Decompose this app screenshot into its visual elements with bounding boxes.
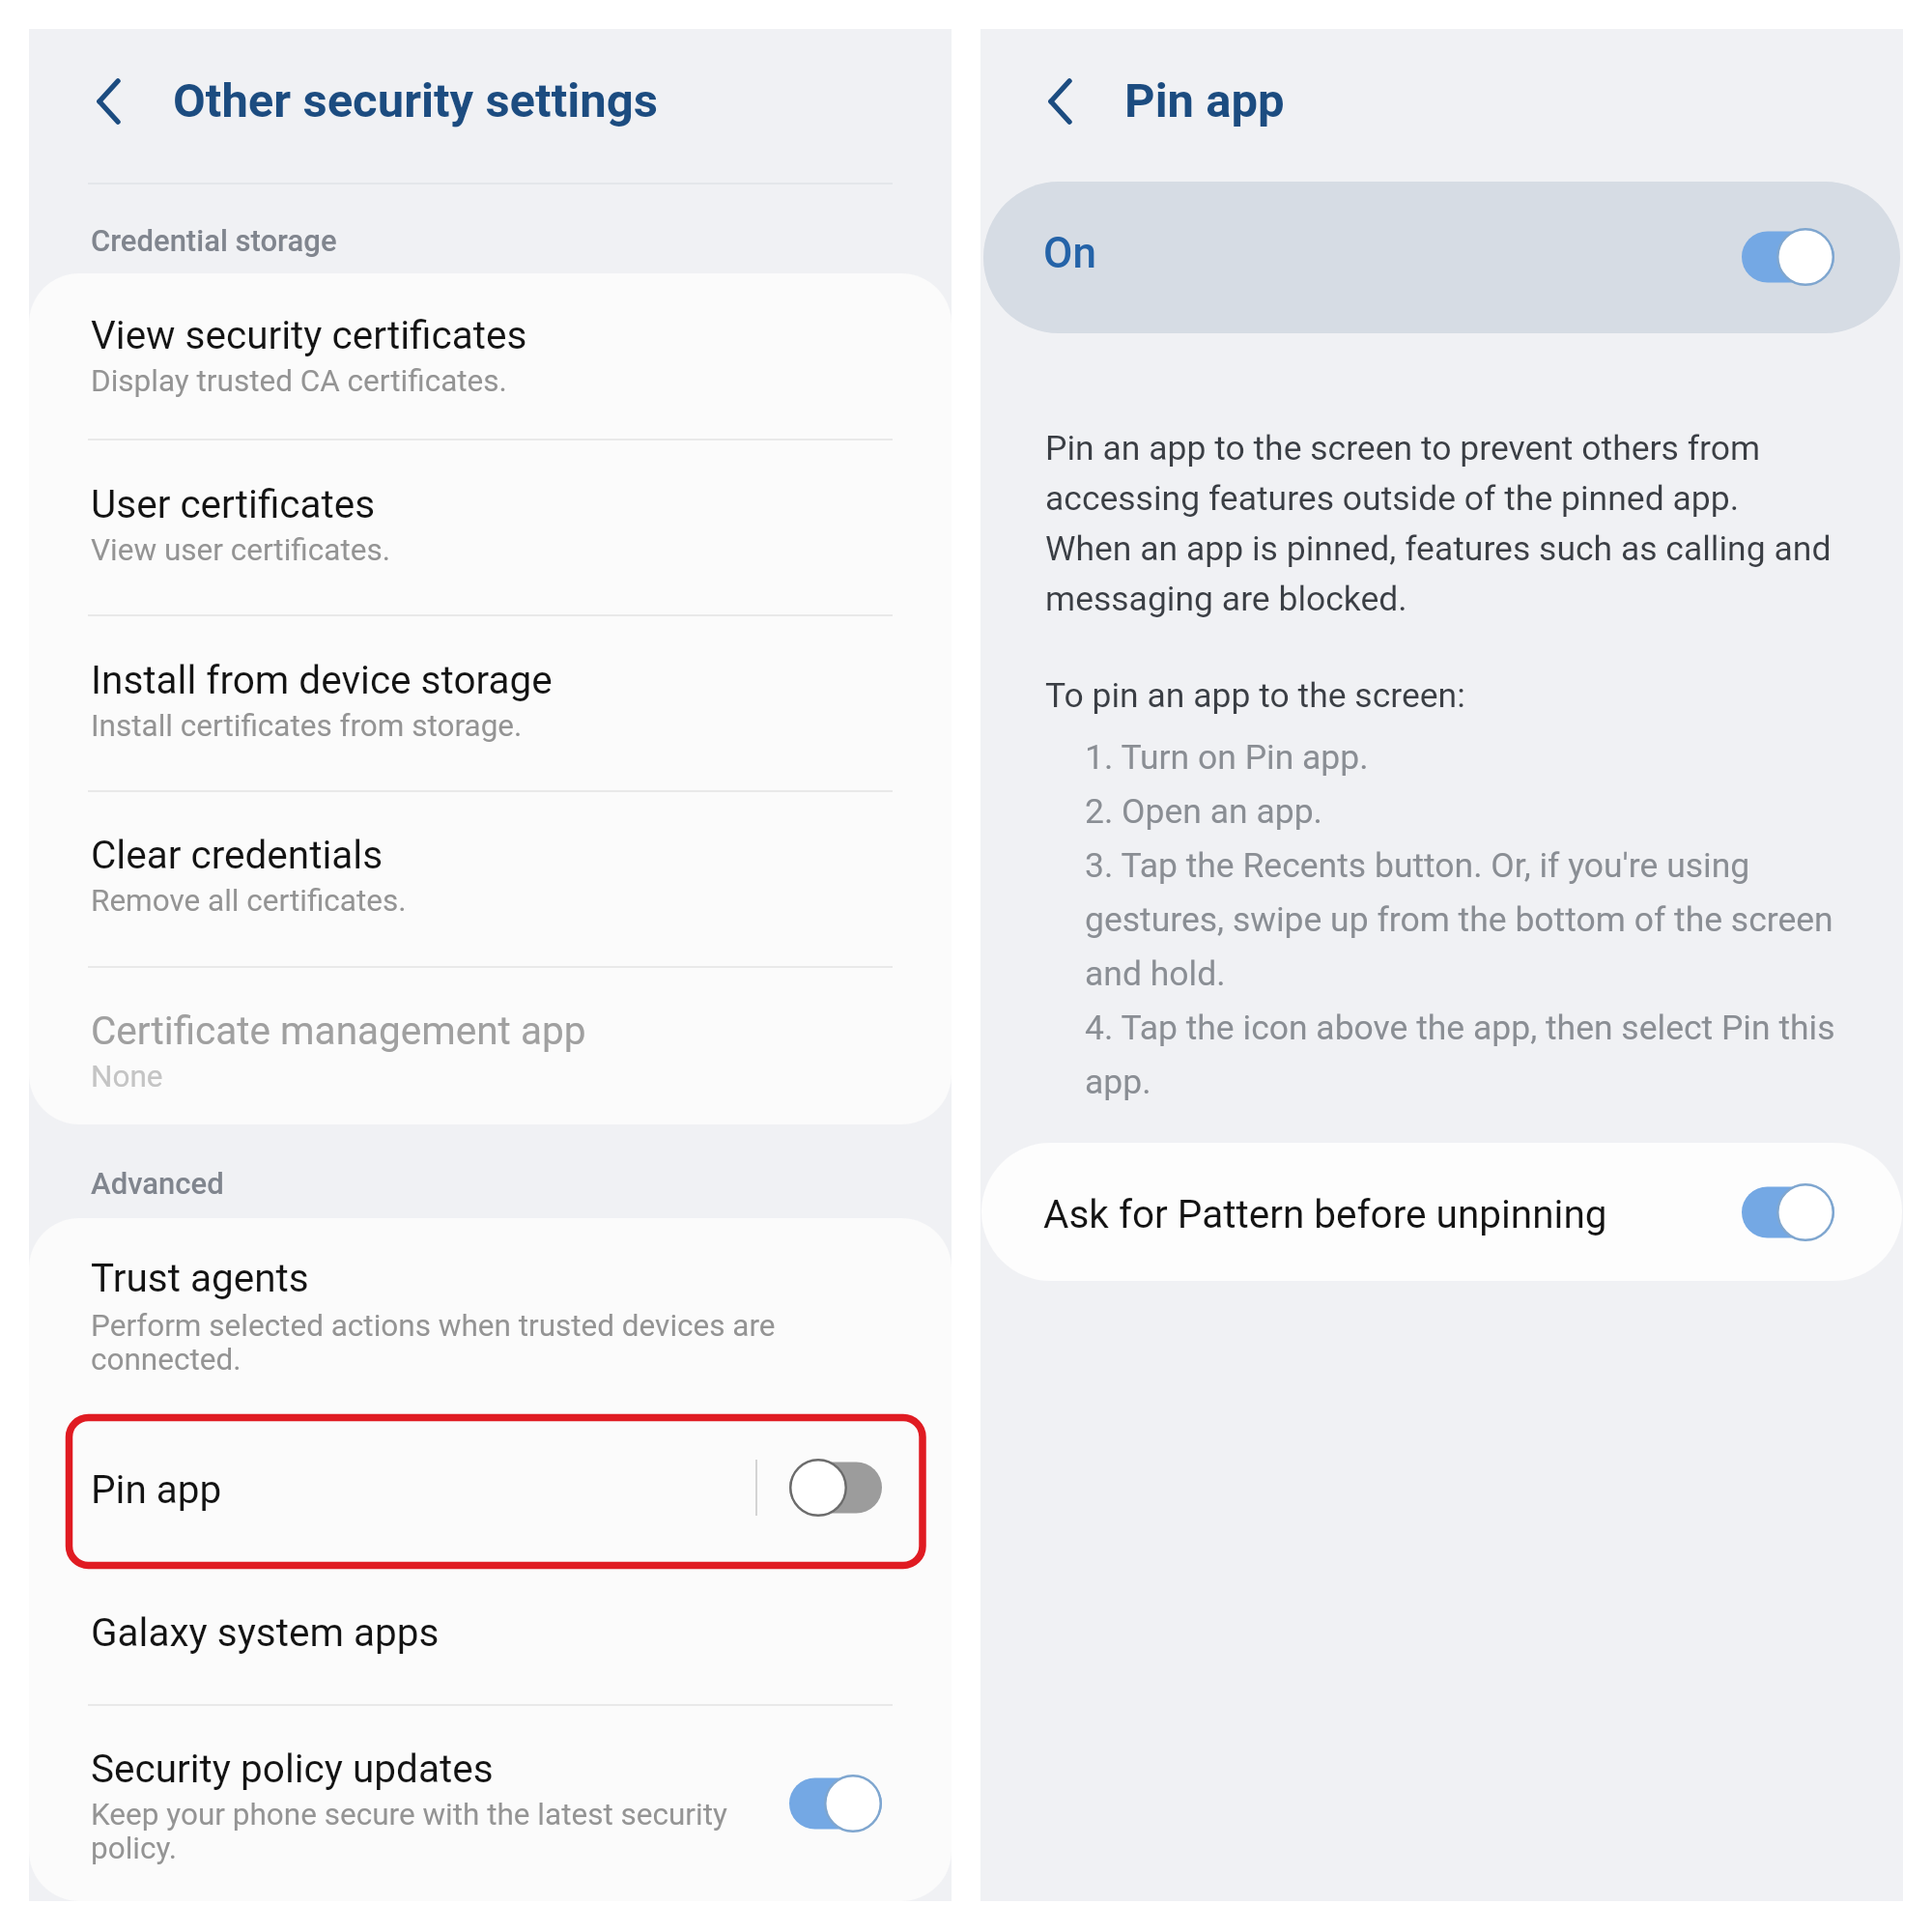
staticText: Security policy updates bbox=[91, 1743, 494, 1793]
button[interactable]: Security policy updates bbox=[29, 1706, 952, 1901]
button[interactable]: Security policy updates, on bbox=[789, 1775, 882, 1833]
staticText: Remove all certificates. bbox=[91, 884, 922, 918]
staticText: View user certificates. bbox=[91, 533, 922, 567]
staticText: To pin an app to the screen: bbox=[1045, 668, 1465, 718]
button[interactable]: Galaxy system apps bbox=[29, 1566, 952, 1704]
staticText: Clear credentials bbox=[91, 829, 384, 879]
staticText: Perform selected actions when trusted de… bbox=[91, 1309, 844, 1377]
button[interactable]: Trust agents bbox=[29, 1218, 952, 1412]
button[interactable]: Clear credentials bbox=[29, 791, 952, 967]
button[interactable]: User certificates bbox=[29, 440, 952, 616]
staticText: Credential storage bbox=[91, 220, 337, 259]
staticText: Other security settings bbox=[173, 71, 658, 129]
button[interactable]: Pin app bbox=[29, 1412, 952, 1566]
staticText: Certificate management app bbox=[91, 1005, 586, 1055]
button[interactable]: Ask for Pattern before unpinning bbox=[981, 1143, 1902, 1281]
button[interactable]: Install from device storage bbox=[29, 616, 952, 791]
staticText: User certificates bbox=[91, 478, 376, 528]
button[interactable]: Back bbox=[29, 29, 952, 183]
staticText: Galaxy system apps bbox=[91, 1606, 440, 1657]
staticText: Pin app bbox=[91, 1463, 222, 1514]
staticText: 1. Turn on Pin app. 2. Open an app. 3. T… bbox=[1085, 726, 1858, 1105]
button[interactable]: Ask for Pattern before unpinning, on bbox=[1742, 1183, 1834, 1241]
staticText: Keep your phone secure with the latest s… bbox=[91, 1798, 767, 1865]
staticText: Install certificates from storage. bbox=[91, 709, 922, 743]
other: Back bbox=[1048, 78, 1072, 125]
staticText: Pin app bbox=[1124, 71, 1285, 129]
other: Back bbox=[97, 78, 121, 125]
staticText: On bbox=[1043, 228, 1096, 278]
staticText: Pin an app to the screen to prevent othe… bbox=[1045, 420, 1837, 621]
staticText: Display trusted CA certificates. bbox=[91, 364, 922, 398]
staticText: Ask for Pattern before unpinning bbox=[1043, 1188, 1607, 1238]
staticText: View security certificates bbox=[91, 309, 527, 359]
staticText: Trust agents bbox=[91, 1252, 309, 1302]
button[interactable]: Certificate management app bbox=[29, 967, 952, 1124]
button[interactable]: Pin app, on bbox=[1742, 228, 1834, 286]
button[interactable]: Back bbox=[980, 29, 1903, 183]
staticText: None bbox=[91, 1060, 922, 1094]
button[interactable]: Pin app, off bbox=[789, 1459, 882, 1517]
button[interactable]: On bbox=[983, 182, 1900, 333]
staticText: Advanced bbox=[91, 1163, 224, 1202]
button[interactable]: View security certificates bbox=[29, 273, 952, 440]
staticText: Install from device storage bbox=[91, 654, 553, 704]
